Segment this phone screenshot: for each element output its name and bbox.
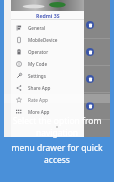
staticText: Rate App: [28, 97, 48, 103]
button[interactable]: More Apps: [11, 106, 84, 118]
staticText: Operator: [28, 49, 49, 55]
other: Rate App: [16, 97, 22, 103]
button[interactable]: Rate App: [11, 94, 84, 106]
staticText: General: [28, 25, 46, 31]
other: More Apps: [16, 109, 22, 115]
button[interactable]: My Code: [11, 58, 84, 70]
staticText: More App: [28, 109, 50, 115]
staticText: Share App: [28, 85, 51, 91]
staticText: menu drawer for quick access: [6, 142, 108, 166]
button[interactable]: Operator: [11, 46, 84, 58]
button[interactable]: Mobile Device: [11, 34, 84, 46]
other: Settings: [16, 73, 22, 79]
button[interactable]: General: [11, 22, 84, 34]
other: My Code: [16, 61, 22, 67]
staticText: MobileDevice: [28, 37, 58, 43]
button[interactable]: Share App: [11, 82, 84, 94]
staticText: Select the option from navigation: [6, 115, 108, 139]
other: Share App: [16, 85, 22, 91]
other: Mobile Device: [16, 37, 22, 43]
other: General: [16, 25, 22, 31]
staticText: Redmi 3S: [36, 12, 60, 19]
staticText: Settings: [28, 73, 46, 79]
staticText: My Code: [28, 61, 48, 67]
other: Operator: [16, 49, 22, 55]
button[interactable]: Settings: [11, 70, 84, 82]
